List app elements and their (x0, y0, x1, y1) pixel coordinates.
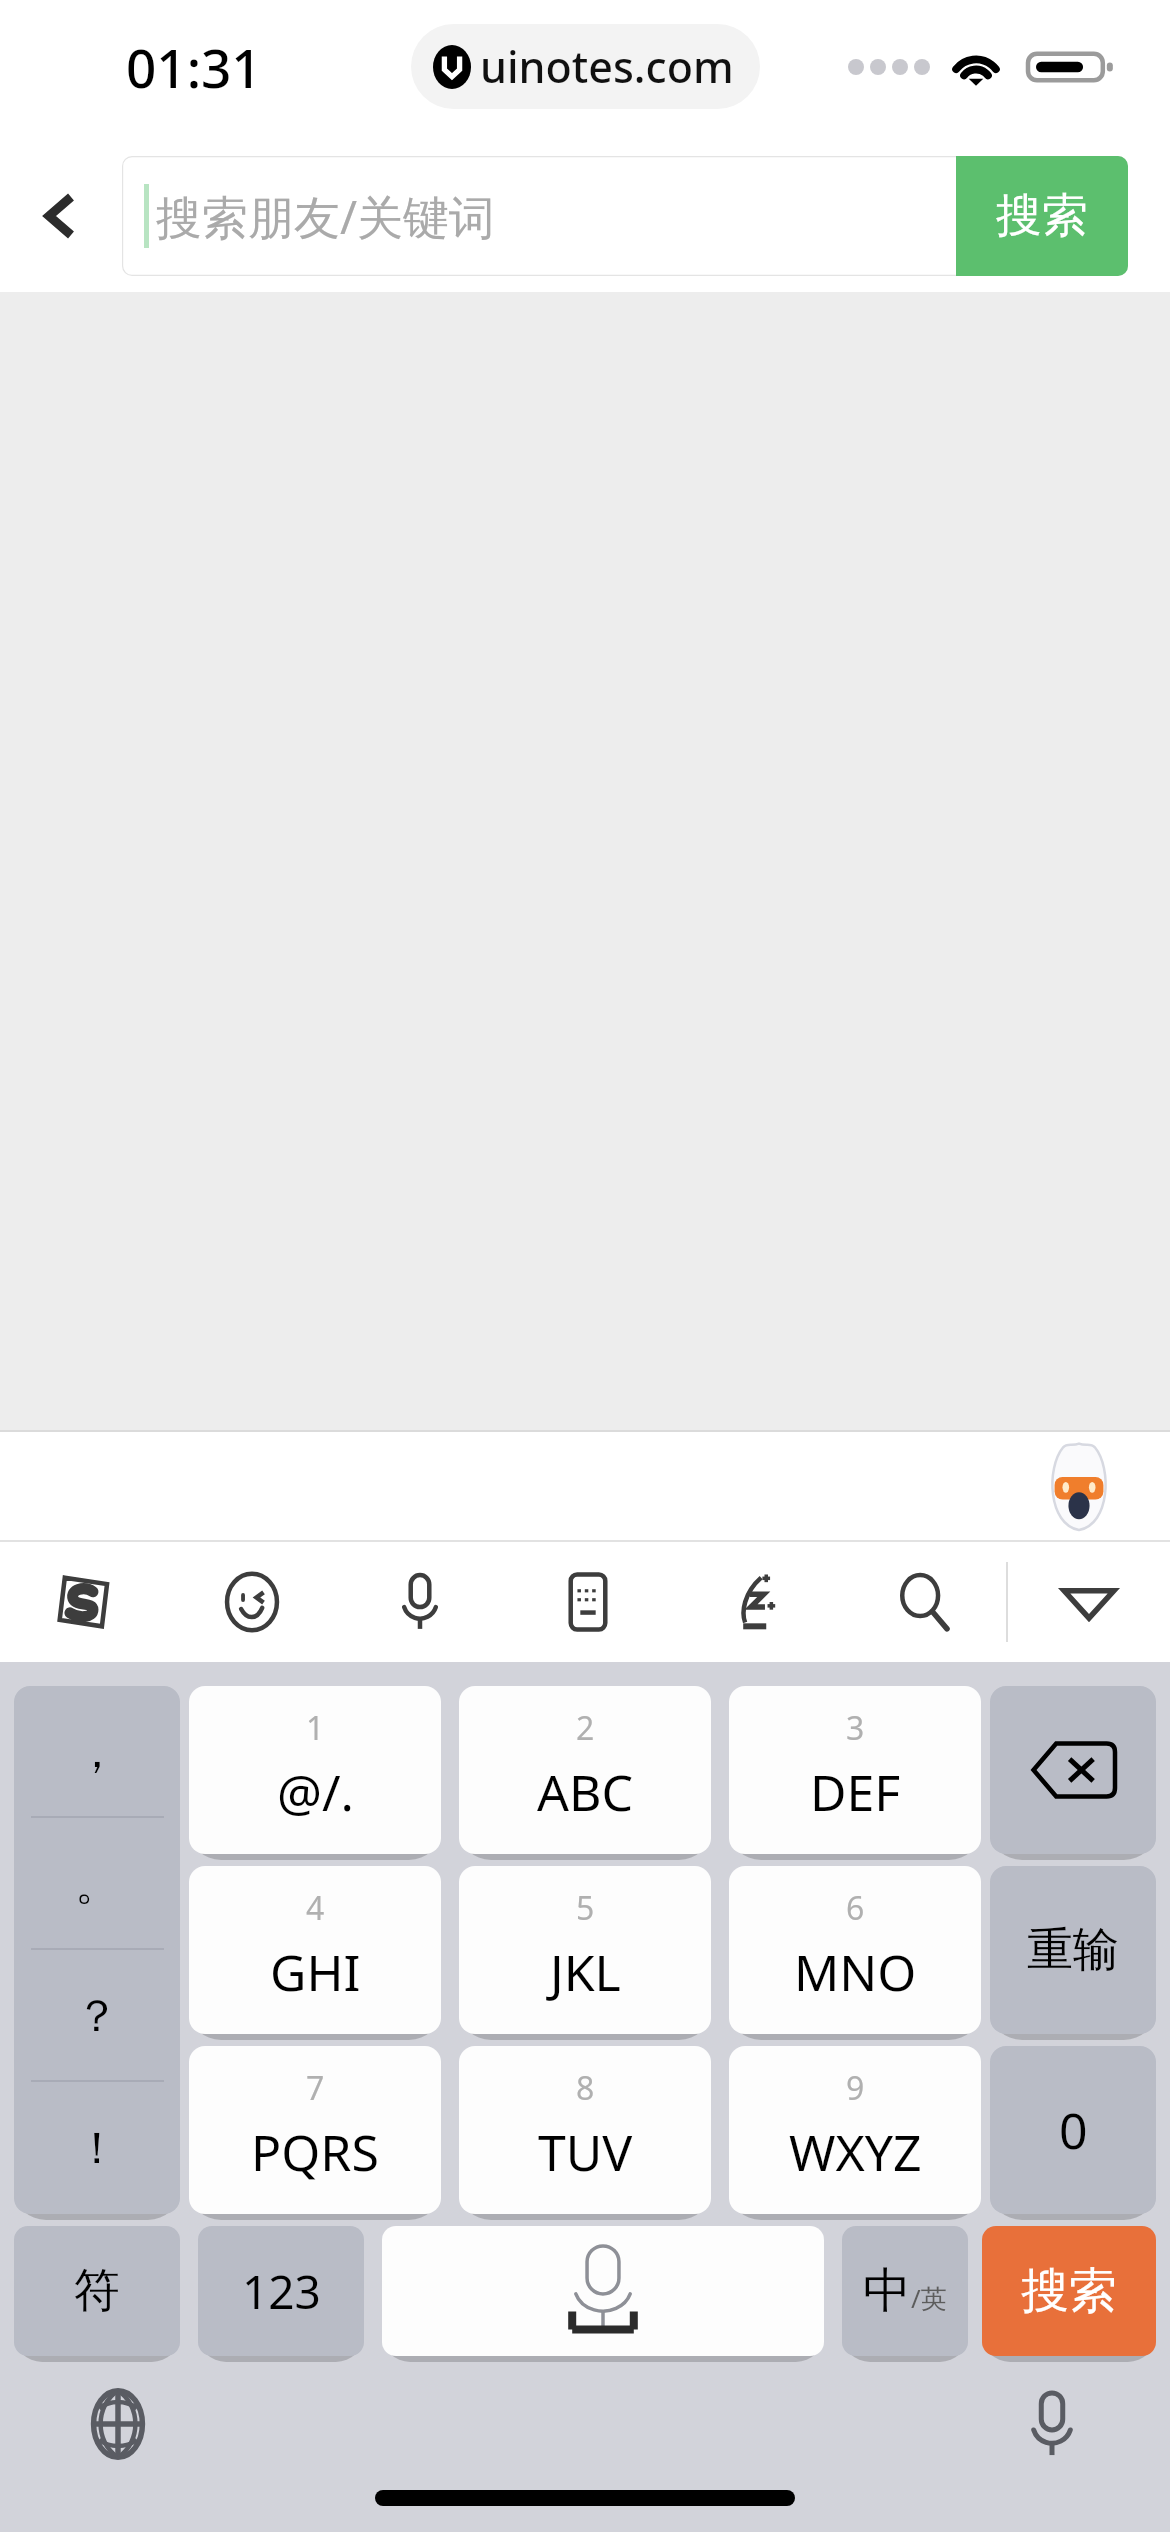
button[interactable]: Sogou (0, 1542, 168, 1662)
staticText: 2 (576, 1706, 595, 1750)
staticText: 5 (576, 1886, 595, 1930)
staticText: 01:31 (126, 31, 262, 103)
button[interactable]: ！ (14, 2082, 180, 2214)
staticText: 中 (863, 2261, 911, 2321)
button[interactable]: Back (0, 140, 122, 292)
staticText: TUV (538, 2118, 633, 2186)
staticText: uinotes.com (480, 37, 734, 96)
button[interactable]: 8 (459, 2046, 711, 2214)
staticText: MNO (794, 1938, 917, 2006)
button[interactable]: 。 (14, 1818, 180, 1950)
staticText: 3 (846, 1706, 865, 1750)
button[interactable]: Chinese English toggle (842, 2226, 968, 2356)
staticText: ， (75, 1725, 119, 1780)
staticText: GHI (270, 1938, 361, 2006)
button[interactable]: Space (382, 2226, 824, 2356)
staticText: 搜索朋友/关键词 (156, 185, 496, 248)
staticText: 4 (306, 1886, 325, 1930)
button[interactable]: 搜索朋友/关键词 (122, 156, 956, 276)
staticText: 123 (242, 2260, 321, 2323)
staticText: 6 (846, 1886, 865, 1930)
button[interactable]: 4 (189, 1866, 441, 2034)
staticText: ？ (75, 1989, 119, 2044)
staticText: WXYZ (789, 2118, 922, 2186)
button[interactable]: Switch keyboard (76, 2382, 160, 2466)
button[interactable]: Search (840, 1542, 1008, 1662)
button[interactable]: Sogou assistant (1046, 1441, 1112, 1531)
button[interactable]: 2 (459, 1686, 711, 1854)
staticText: 搜索 (1021, 2261, 1117, 2321)
button[interactable]: 7 (189, 2046, 441, 2214)
button[interactable]: Dictation (1010, 2382, 1094, 2466)
button[interactable]: 符 (14, 2226, 180, 2356)
button[interactable]: 1 (189, 1686, 441, 1854)
staticText: ！ (75, 2121, 119, 2176)
staticText: PQRS (251, 2118, 379, 2186)
staticText: /英 (911, 2280, 947, 2316)
staticText: 1 (306, 1706, 325, 1750)
button[interactable]: Emoji (168, 1542, 336, 1662)
staticText: 0 (1059, 2096, 1088, 2164)
button[interactable]: 搜索 (982, 2226, 1156, 2356)
button[interactable]: Backspace (990, 1686, 1156, 1854)
staticText: 符 (74, 2262, 120, 2320)
staticText: DEF (810, 1758, 901, 1826)
button[interactable]: 3 (729, 1686, 981, 1854)
staticText: 搜索 (996, 187, 1088, 245)
staticText: JKL (550, 1938, 621, 2006)
button[interactable]: ， (14, 1686, 180, 1818)
button[interactable]: 搜索 (956, 156, 1128, 276)
staticText: ABC (537, 1758, 634, 1826)
button[interactable]: Voice input (336, 1542, 504, 1662)
staticText: 。 (75, 1857, 119, 1912)
staticText: 重输 (1027, 1921, 1119, 1979)
button[interactable]: 重输 (990, 1866, 1156, 2034)
button[interactable]: 123 (198, 2226, 364, 2356)
button[interactable]: Hide keyboard (1008, 1542, 1170, 1662)
button[interactable]: 9 (729, 2046, 981, 2214)
button[interactable]: Handwriting (672, 1542, 840, 1662)
button[interactable]: ？ (14, 1950, 180, 2082)
staticText: @/. (277, 1758, 354, 1826)
button[interactable]: 5 (459, 1866, 711, 2034)
staticText: 7 (306, 2066, 325, 2110)
button[interactable]: Keyboard layout (504, 1542, 672, 1662)
staticText: 9 (846, 2066, 865, 2110)
staticText: 8 (576, 2066, 595, 2110)
button[interactable]: 0 (990, 2046, 1156, 2214)
button[interactable]: 6 (729, 1866, 981, 2034)
